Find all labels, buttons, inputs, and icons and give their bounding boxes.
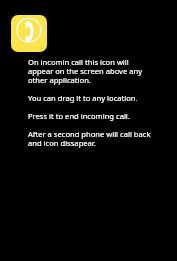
button[interactable]: Incoming call xyxy=(11,15,47,52)
staticText: On incomin call this icon will appear on… xyxy=(28,57,151,148)
